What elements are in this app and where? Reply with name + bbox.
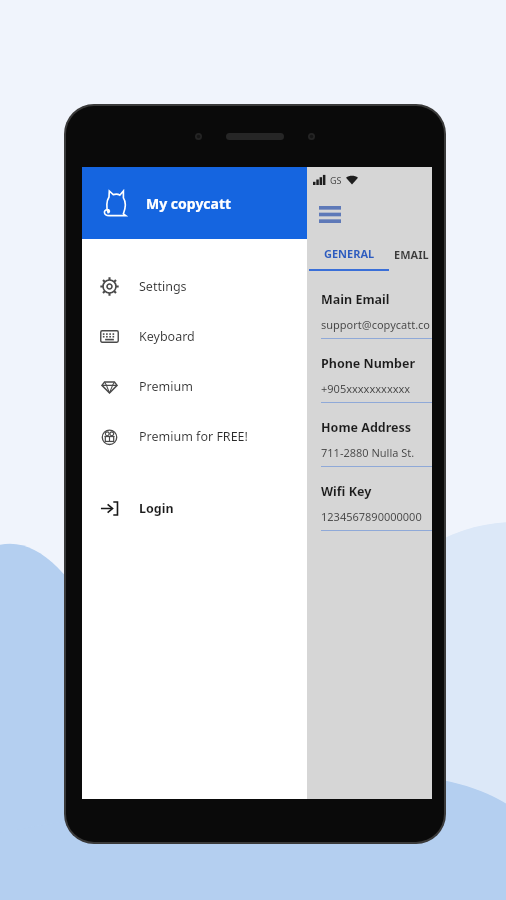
staticText: Wifi Key: [321, 483, 372, 500]
staticText: GS: [330, 174, 342, 186]
staticText: EMAIL: [394, 247, 429, 262]
staticText: Main Email: [321, 291, 390, 308]
button[interactable]: Main Email: [307, 285, 432, 349]
staticText: 711-2880 Nulla St.: [321, 445, 415, 460]
button[interactable]: Premium for FREE!: [82, 411, 307, 461]
button[interactable]: My copycatt: [82, 167, 307, 239]
staticText: 1234567890000000: [321, 509, 422, 524]
staticText: Settings: [139, 278, 187, 295]
button[interactable]: Premium: [82, 361, 307, 411]
staticText: +905xxxxxxxxxxx: [321, 381, 411, 396]
staticText: support@copycatt.com: [321, 317, 432, 332]
button[interactable]: GENERAL: [307, 235, 391, 273]
button[interactable]: Settings: [82, 261, 307, 311]
button[interactable]: Open navigation menu: [307, 193, 353, 235]
button[interactable]: Login: [82, 483, 307, 533]
button[interactable]: Home Address: [307, 413, 432, 477]
staticText: GENERAL: [324, 246, 375, 261]
button[interactable]: EMAIL: [391, 235, 432, 273]
button[interactable]: Keyboard: [82, 311, 307, 361]
staticText: Login: [139, 500, 174, 517]
staticText: Premium: [139, 378, 193, 395]
staticText: Premium for FREE!: [139, 428, 248, 445]
button[interactable]: Phone Number: [307, 349, 432, 413]
staticText: My copycatt: [146, 194, 232, 213]
staticText: Keyboard: [139, 328, 195, 345]
button[interactable]: Wifi Key: [307, 477, 432, 541]
staticText: Home Address: [321, 419, 412, 436]
staticText: Phone Number: [321, 355, 415, 372]
